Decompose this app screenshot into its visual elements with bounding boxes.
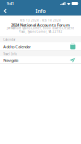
staticText: Feb 13 2024 - Feb 14 2024 [20,19,61,22]
button[interactable]: Back [0,7,10,15]
staticText: Info [35,7,45,15]
staticText: Navigate [3,57,18,63]
staticText: 9:41 [7,1,14,6]
staticText: Calendar [3,38,15,41]
staticText: JW Marriott Tysons Corner, 8000 Towers C… [7,26,74,30]
staticText: Place, Tysons Corner, VA 22182 [18,30,62,33]
button[interactable]: Navigate [0,56,81,63]
staticText: Travel Info [3,52,17,56]
button[interactable]: Add to Calendar [0,42,81,50]
staticText: Add to Calendar [3,44,31,49]
staticText: 2024 National Accounts Forum [11,22,70,28]
